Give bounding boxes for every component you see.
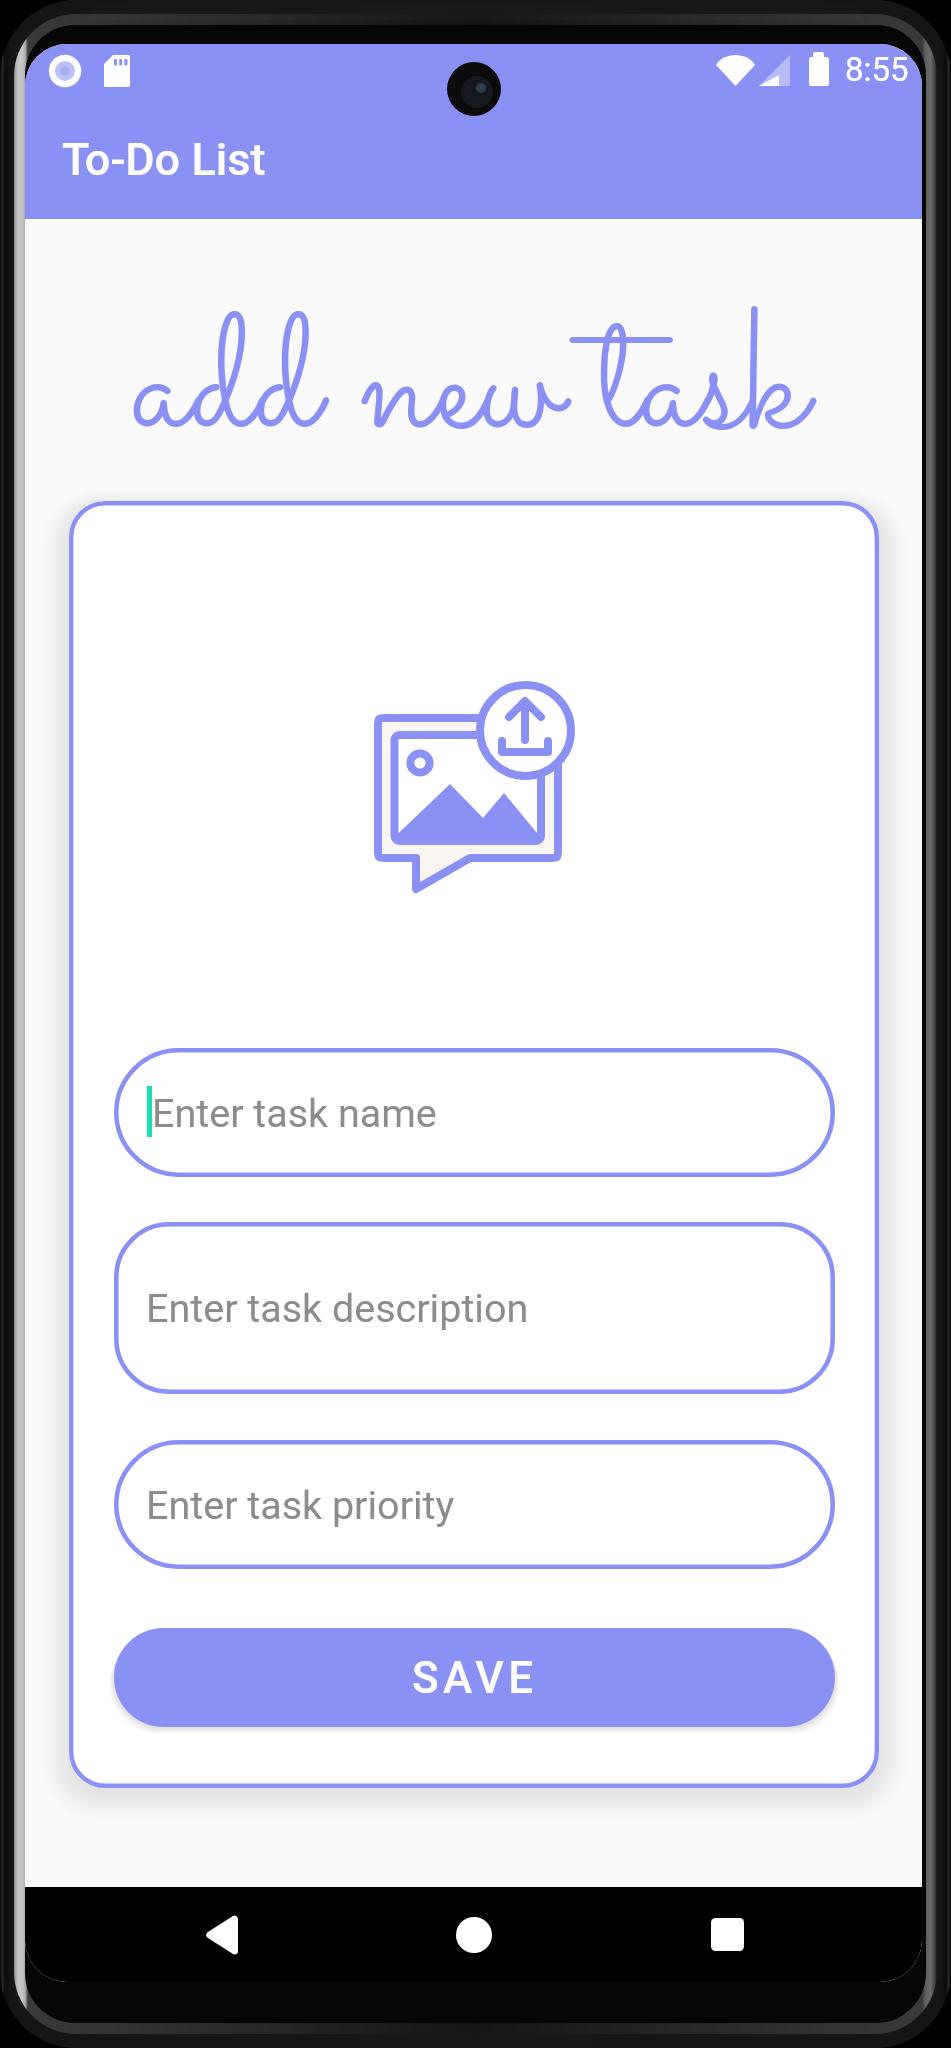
staticText: To-Do List <box>62 133 266 186</box>
staticText: Enter task description <box>146 1285 529 1331</box>
staticText: 8:55 <box>845 50 909 89</box>
button[interactable]: SAVE <box>114 1628 835 1727</box>
button[interactable]: Recent apps <box>669 1887 785 1982</box>
button[interactable]: Enter task name <box>114 1048 835 1177</box>
button[interactable]: Back <box>164 1887 280 1982</box>
button[interactable]: Enter task priority <box>114 1440 835 1569</box>
staticText: Enter task priority <box>146 1482 455 1528</box>
button[interactable]: Home <box>416 1887 532 1982</box>
staticText: add new task <box>25 263 918 518</box>
button[interactable]: Upload image <box>371 674 573 893</box>
staticText: SAVE <box>412 1652 538 1704</box>
button[interactable]: Enter task description <box>114 1222 835 1394</box>
staticText: Enter task name <box>152 1090 437 1136</box>
